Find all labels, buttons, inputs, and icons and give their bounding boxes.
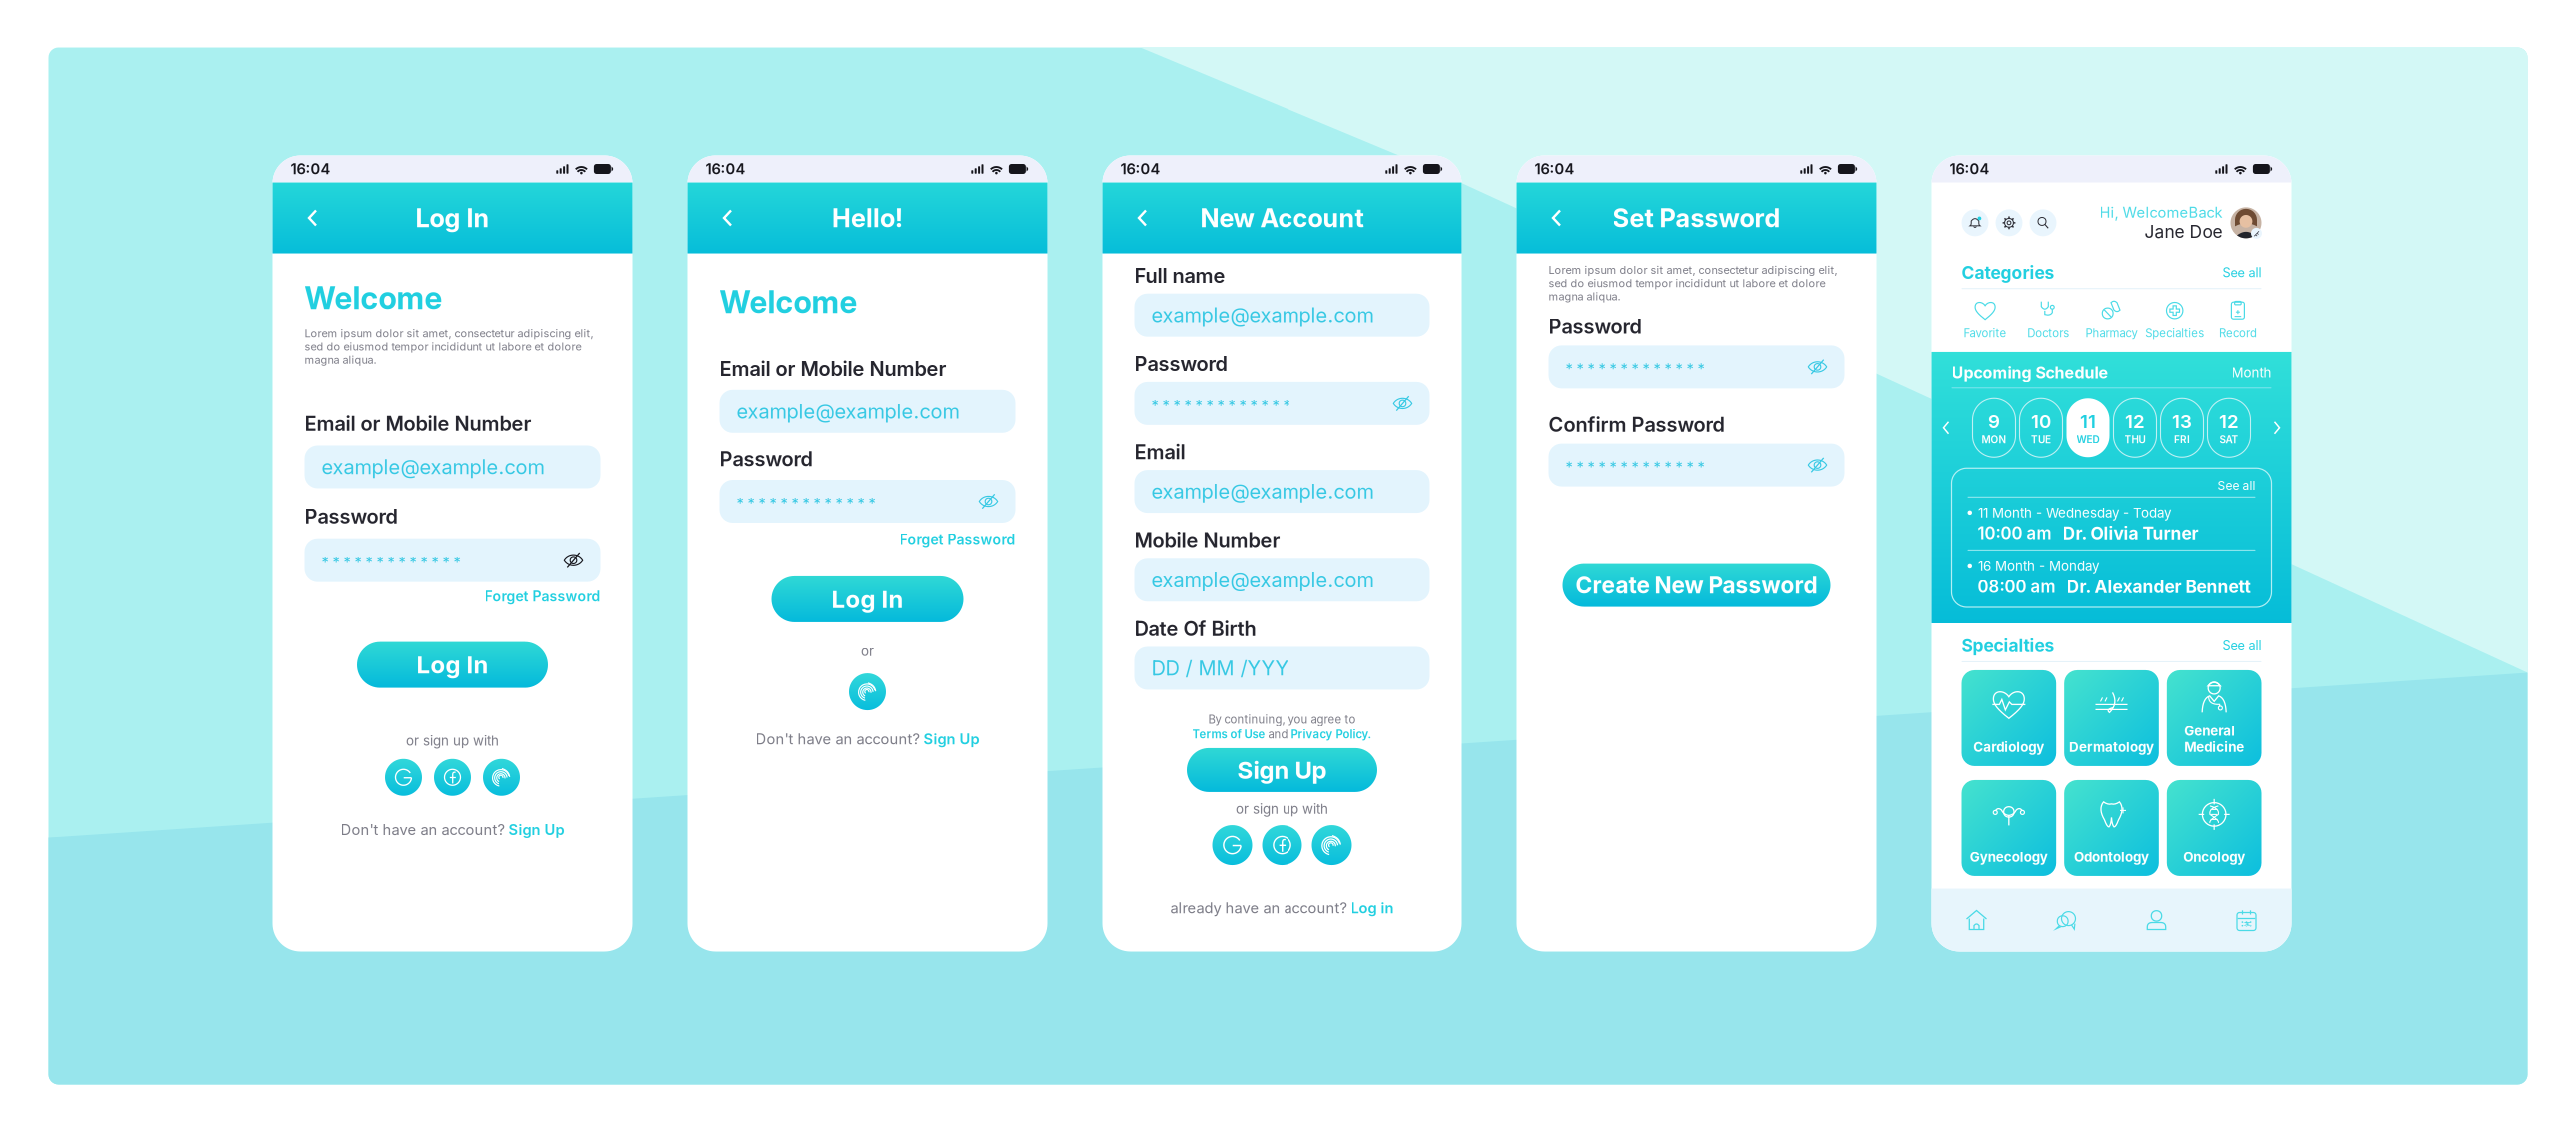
staticText: Specialties	[1962, 635, 2055, 656]
staticText: Lorem ipsum dolor sit amet, consectetur …	[1549, 263, 1838, 303]
staticText: WED	[2077, 433, 2100, 446]
button[interactable]: * * * * * * * * * * * * *	[1134, 382, 1430, 425]
staticText: Upcoming Schedule	[1952, 363, 2109, 382]
button[interactable]: Back	[1539, 200, 1575, 236]
button[interactable]: already have an account?	[1170, 899, 1394, 917]
button[interactable]: Cardiology	[1962, 670, 2056, 766]
button[interactable]: Back	[709, 200, 745, 236]
staticText: Set Password	[1613, 203, 1781, 233]
button[interactable]: Sign in with Google	[385, 759, 422, 796]
button[interactable]: Specialties	[2143, 298, 2206, 340]
button[interactable]: Gynecology	[1962, 780, 2056, 876]
button[interactable]: Settings	[1996, 209, 2023, 236]
button[interactable]: Don't have an account?	[755, 730, 979, 748]
button[interactable]: 12	[2114, 398, 2157, 457]
staticText: and	[1268, 727, 1288, 741]
button[interactable]: 12	[2208, 398, 2251, 457]
button[interactable]: Oncology	[2167, 780, 2262, 876]
staticText: * * * * * * * * * * * * *	[321, 553, 460, 571]
staticText: Password	[304, 504, 397, 529]
button[interactable]: example@example.com	[719, 390, 1015, 433]
button[interactable]: Log In	[771, 576, 963, 622]
button[interactable]: Log In	[357, 642, 548, 688]
staticText: 12	[2125, 410, 2145, 432]
staticText: Log In	[415, 203, 489, 233]
staticText: Categories	[1962, 262, 2055, 283]
button[interactable]: example@example.com	[1134, 294, 1430, 337]
button[interactable]: * * * * * * * * * * * * *	[304, 539, 600, 582]
staticText: Sign Up	[1237, 755, 1327, 784]
button[interactable]: Messages	[2022, 909, 2112, 931]
staticText: 08:00 am	[1978, 576, 2056, 597]
staticText: Password	[1549, 314, 1642, 338]
button[interactable]: 10	[2020, 398, 2063, 457]
button[interactable]: Sign in with Facebook	[1262, 825, 1302, 865]
button[interactable]: See all	[2223, 265, 2262, 280]
button[interactable]: Create New Password	[1563, 564, 1831, 607]
button[interactable]: 11	[2067, 398, 2110, 457]
staticText: Password	[1134, 352, 1227, 376]
button[interactable]: Previous week	[1943, 421, 1950, 435]
button[interactable]: example@example.com	[304, 445, 600, 488]
staticText: Don't have an account?	[340, 821, 504, 838]
button[interactable]: 9	[1973, 398, 2016, 457]
staticText: Email or Mobile Number	[304, 411, 531, 435]
button[interactable]: Sign in with fingerprint	[849, 673, 886, 710]
staticText: Dr. Alexander Bennett	[2067, 576, 2251, 597]
button[interactable]: Record	[2206, 298, 2270, 340]
staticText: SAT	[2220, 433, 2239, 446]
button[interactable]: Forget Password	[719, 523, 1015, 548]
button[interactable]: Doctors	[2017, 298, 2080, 340]
button[interactable]: Calendar	[2202, 909, 2292, 931]
staticText: See all	[2223, 265, 2262, 280]
button[interactable]: Privacy Policy.	[1291, 727, 1372, 741]
button[interactable]: Profile	[2112, 909, 2202, 931]
button[interactable]: 13	[2161, 398, 2204, 457]
button[interactable]: * * * * * * * * * * * * *	[719, 480, 1015, 523]
button[interactable]: example@example.com	[1134, 470, 1430, 513]
button[interactable]: See all	[2223, 638, 2262, 653]
button[interactable]: Next week	[2274, 421, 2281, 435]
button[interactable]: example@example.com	[1134, 558, 1430, 601]
button[interactable]: * * * * * * * * * * * * *	[1549, 345, 1845, 388]
staticText: Hello!	[832, 203, 903, 233]
button[interactable]: Back	[1124, 200, 1160, 236]
staticText: Confirm Password	[1549, 412, 1725, 437]
staticText: Forget Password	[484, 588, 600, 605]
button[interactable]: See all	[1968, 478, 2256, 493]
button[interactable]: Back	[294, 200, 330, 236]
button[interactable]: Dermatology	[2064, 670, 2159, 766]
button[interactable]: Notifications	[1962, 209, 1989, 236]
button[interactable]: Odontology	[2064, 780, 2159, 876]
button[interactable]: Pharmacy	[2080, 298, 2143, 340]
button[interactable]: General Medicine	[2167, 670, 2262, 766]
button[interactable]: DD / MM /YYY	[1134, 646, 1430, 689]
button[interactable]: Terms of Use	[1192, 727, 1265, 741]
staticText: Log In	[416, 650, 488, 679]
staticText: Log in	[1351, 899, 1394, 917]
button[interactable]: Don't have an account?	[340, 821, 564, 838]
staticText: Sign Up	[508, 821, 564, 838]
button[interactable]: Sign in with Google	[1212, 825, 1252, 865]
staticText: Privacy Policy.	[1291, 727, 1372, 741]
staticText: Gynecology	[1970, 849, 2048, 865]
button[interactable]: Home	[1932, 909, 2022, 931]
staticText: Lorem ipsum dolor sit amet, consectetur …	[304, 327, 593, 366]
staticText: General Medicine	[2184, 723, 2244, 755]
staticText: Password	[719, 447, 812, 471]
button[interactable]: Sign in with fingerprint	[1312, 825, 1352, 865]
button[interactable]: Month	[2232, 364, 2272, 381]
button[interactable]: Favorite	[1954, 298, 2017, 340]
button[interactable]: Sign in with Facebook	[434, 759, 471, 796]
staticText: * * * * * * * * * * * * *	[1566, 360, 1705, 378]
staticText: * * * * * * * * * * * * *	[1566, 458, 1705, 476]
button[interactable]: Sign in with fingerprint	[483, 759, 520, 796]
button[interactable]: Forget Password	[304, 582, 600, 605]
button[interactable]: Sign Up	[1187, 748, 1377, 792]
staticText: See all	[2218, 478, 2256, 493]
staticText: THU	[2125, 433, 2146, 446]
button[interactable]: * * * * * * * * * * * * *	[1549, 444, 1845, 487]
button[interactable]: Search	[2030, 209, 2057, 236]
staticText: Record	[2219, 326, 2257, 340]
staticText: MON	[1982, 433, 2007, 446]
